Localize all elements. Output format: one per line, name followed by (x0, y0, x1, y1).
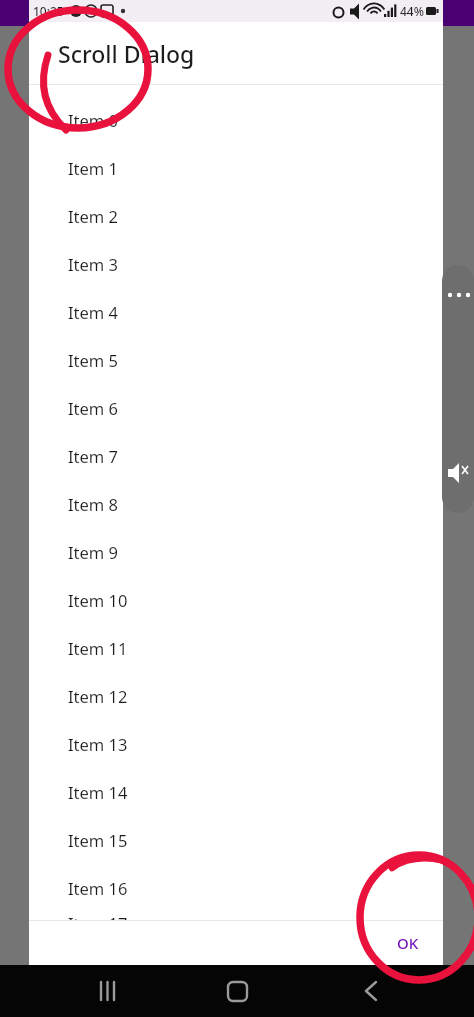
button[interactable]: Item 8 (29, 480, 443, 528)
staticText: Item 6 (68, 397, 119, 419)
staticText: Item 1 (68, 157, 119, 179)
staticText: Item 13 (68, 733, 128, 755)
staticText: Item 15 (68, 829, 128, 851)
staticText: Item 8 (68, 493, 119, 515)
staticText: Item 14 (68, 781, 128, 803)
button[interactable]: Item 1 (29, 144, 443, 192)
button[interactable]: Item 6 (29, 384, 443, 432)
button[interactable]: OK (387, 926, 429, 960)
staticText: 44% (400, 3, 424, 19)
staticText: OK (397, 933, 419, 953)
staticText: 10:25 (33, 3, 64, 19)
button[interactable]: Item 7 (29, 432, 443, 480)
button[interactable]: Item 5 (29, 336, 443, 384)
button[interactable]: Item 10 (29, 576, 443, 624)
button[interactable]: Item 4 (29, 288, 443, 336)
staticText: Item 11 (68, 637, 128, 659)
button[interactable]: Item 17 (29, 912, 443, 920)
staticText: Item 10 (68, 589, 128, 611)
button[interactable]: Item 12 (29, 672, 443, 720)
button[interactable]: Edge panel (442, 265, 474, 513)
button[interactable]: Item 15 (29, 816, 443, 864)
button[interactable]: Item 11 (29, 624, 443, 672)
staticText: Item 7 (68, 445, 119, 467)
staticText: Scroll Dialog (58, 38, 195, 69)
button[interactable]: Item 0 (29, 96, 443, 144)
staticText: Item 9 (68, 541, 119, 563)
staticText: Item 5 (68, 349, 119, 371)
button[interactable]: Item 16 (29, 864, 443, 912)
button[interactable]: Item 13 (29, 720, 443, 768)
staticText: Item 3 (68, 253, 119, 275)
staticText: Item 17 (68, 912, 128, 920)
staticText: Item 16 (68, 877, 128, 899)
button[interactable]: Item 2 (29, 192, 443, 240)
button[interactable]: Item 3 (29, 240, 443, 288)
staticText: Item 0 (68, 109, 119, 131)
staticText: Item 4 (68, 301, 119, 323)
button[interactable]: Item 14 (29, 768, 443, 816)
staticText: Item 2 (68, 205, 119, 227)
staticText: Item 12 (68, 685, 128, 707)
button[interactable]: Item 9 (29, 528, 443, 576)
